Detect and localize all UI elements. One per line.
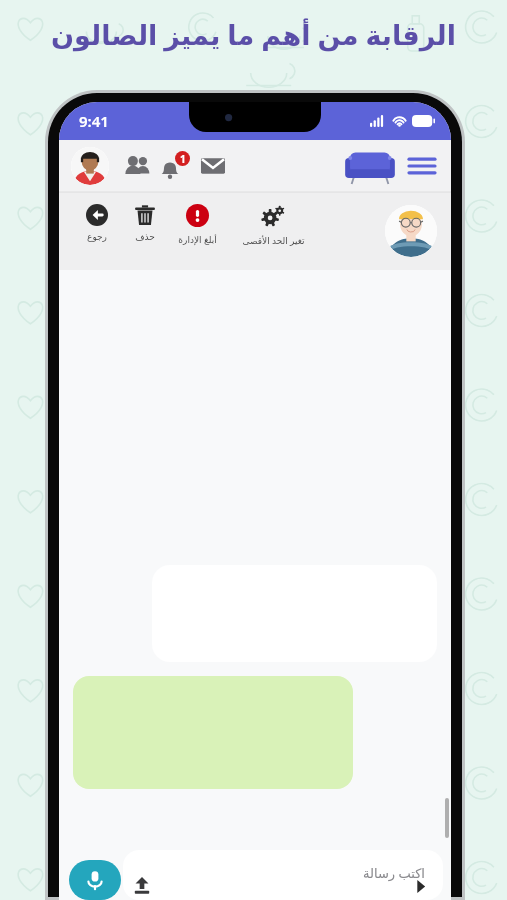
button[interactable]: تغير الحد الأقصى <box>225 192 321 270</box>
button[interactable]: Contacts <box>121 150 153 182</box>
staticText: حذف <box>135 232 155 242</box>
staticText: تغير الحد الأقصى <box>242 234 305 246</box>
staticText: رجوع <box>87 232 107 242</box>
button[interactable]: Messages <box>197 150 229 182</box>
button[interactable]: Attach file <box>129 872 155 898</box>
button[interactable]: أبلغ الإدارة <box>169 192 225 270</box>
staticText: الرقابة من أهم ما يميز الصالون <box>51 16 456 53</box>
button[interactable]: Menu <box>405 149 439 183</box>
button[interactable]: اكتب رسالة <box>123 850 443 900</box>
button[interactable]: Profile <box>71 147 109 185</box>
staticText: أبلغ الإدارة <box>178 233 217 245</box>
button[interactable]: Member avatar <box>385 205 437 257</box>
staticText: 9:41 <box>79 111 109 131</box>
button[interactable]: حذف <box>121 192 169 270</box>
staticText: 1 <box>180 152 186 166</box>
button[interactable]: Message <box>73 676 353 789</box>
button[interactable]: Notifications <box>159 150 191 182</box>
button[interactable]: Send <box>409 874 433 898</box>
staticText: اكتب رسالة <box>363 864 425 882</box>
button[interactable]: Salon logo <box>343 146 397 186</box>
button[interactable]: Voice message <box>69 860 121 900</box>
button[interactable]: رجوع <box>73 192 121 270</box>
